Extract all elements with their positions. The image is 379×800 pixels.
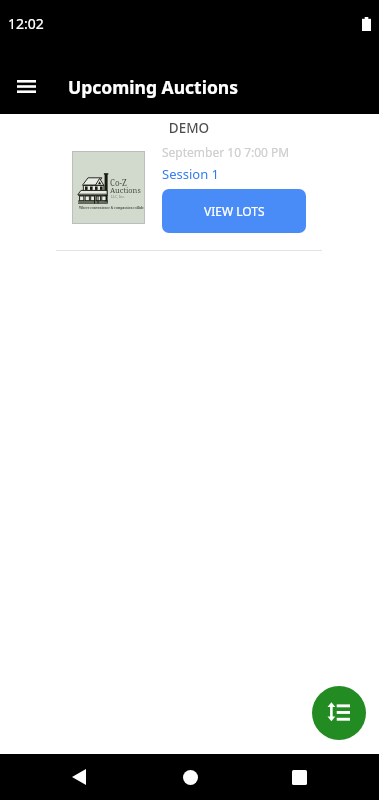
button[interactable]: Session 1 <box>162 165 219 183</box>
staticText: September 10 7:00 PM <box>162 144 290 160</box>
button[interactable]: Sort auctions <box>312 686 366 740</box>
staticText: Where convenience & compassion collide <box>79 206 144 210</box>
staticText: 12:02 <box>8 14 44 33</box>
staticText: Co-Z <box>110 177 127 188</box>
staticText: DEMO <box>56 119 322 137</box>
staticText: VIEW LOTS <box>204 203 265 219</box>
button[interactable]: Recent apps <box>275 754 323 800</box>
button[interactable]: VIEW LOTS <box>162 189 306 233</box>
staticText: Auctions <box>110 185 141 195</box>
button[interactable]: Home <box>166 754 214 800</box>
staticText: LLC, Inc. <box>111 194 125 199</box>
button[interactable]: Back <box>55 754 103 800</box>
button[interactable]: DEMO <box>0 119 379 251</box>
staticText: Upcoming Auctions <box>68 75 238 99</box>
button[interactable]: Open navigation menu <box>9 69 43 103</box>
